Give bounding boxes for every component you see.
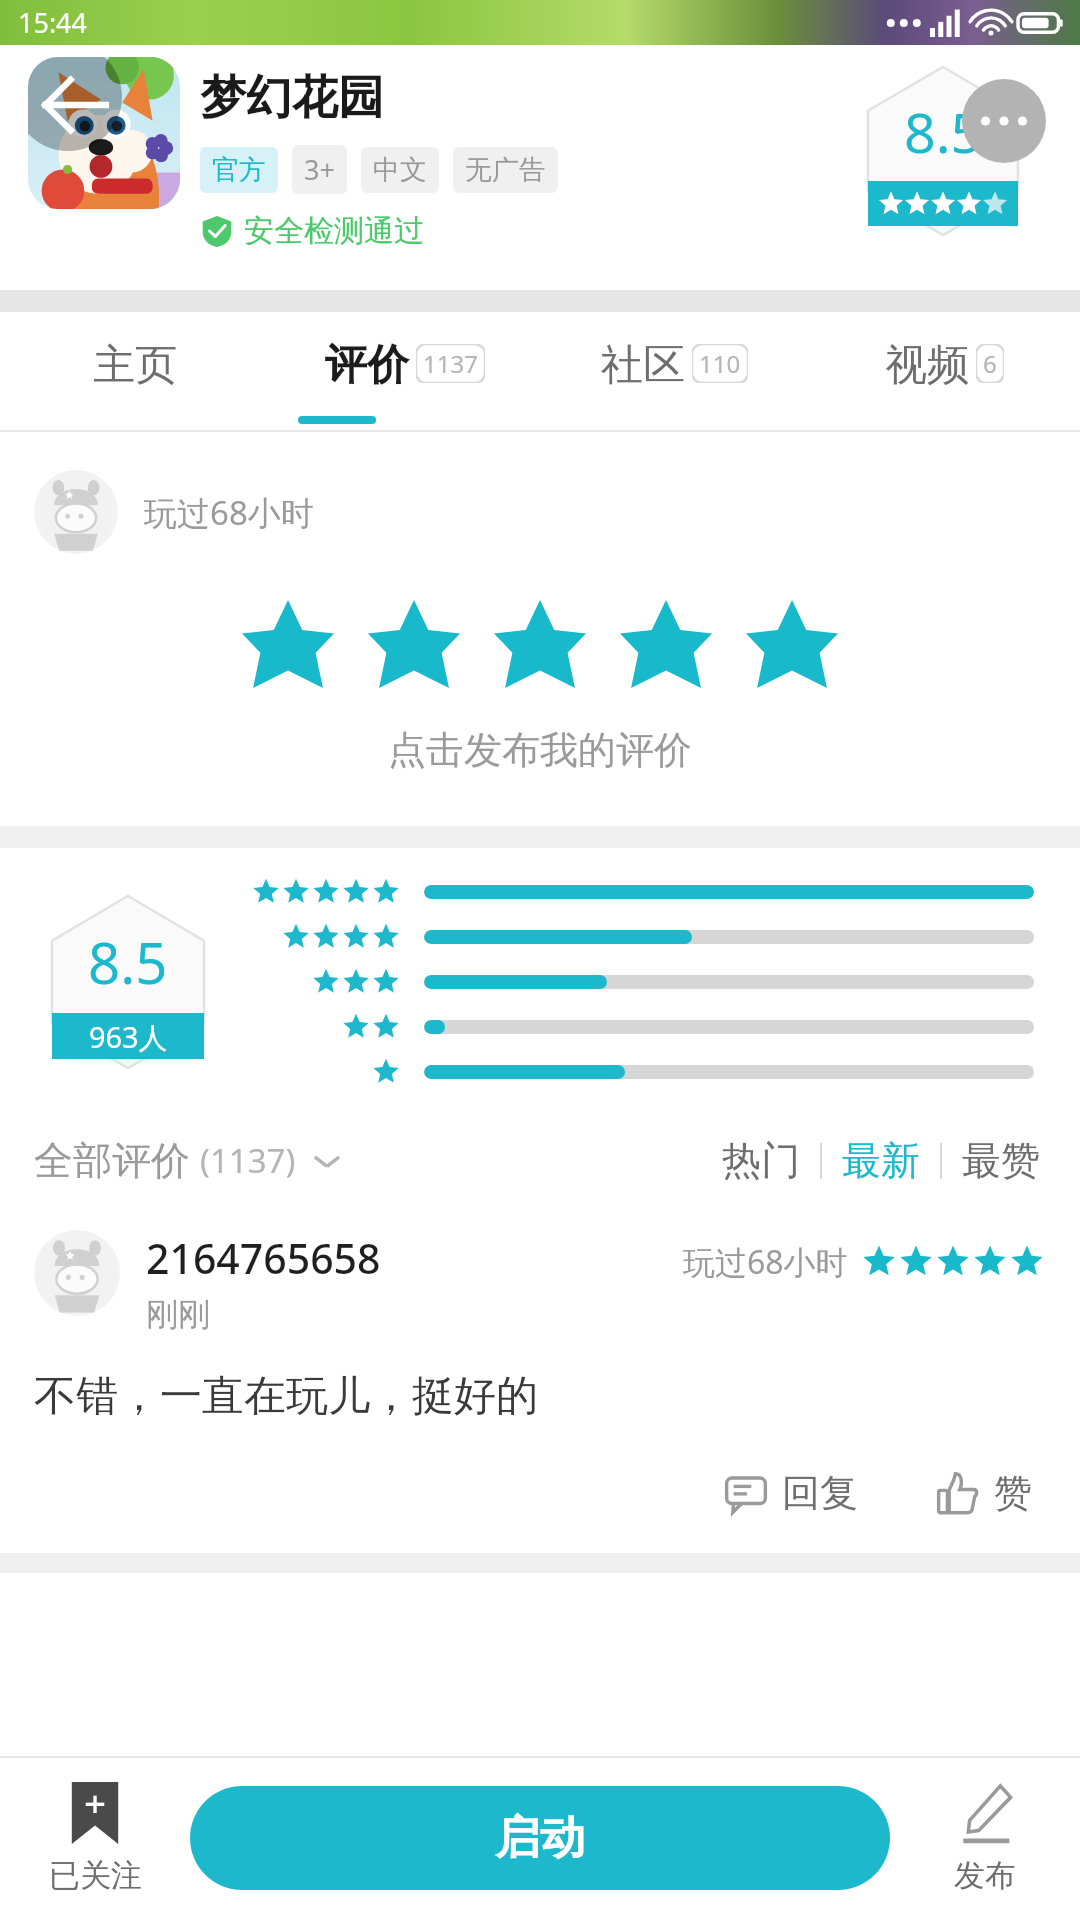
button[interactable]: 点击发布我的评价 bbox=[0, 726, 1080, 774]
button[interactable]: Back bbox=[28, 57, 122, 151]
staticText: 玩过68小时 bbox=[683, 1240, 848, 1284]
button[interactable]: 发布 bbox=[890, 1756, 1080, 1920]
staticText: 3+ bbox=[304, 151, 335, 188]
staticText: 最赞 bbox=[962, 1136, 1040, 1185]
staticText: 1137 bbox=[423, 347, 478, 380]
staticText: 刚刚 bbox=[146, 1294, 210, 1334]
staticText: 6 bbox=[983, 347, 997, 380]
button[interactable]: 热门 bbox=[722, 1136, 800, 1185]
staticText: 最新 bbox=[842, 1136, 920, 1185]
button[interactable] bbox=[0, 600, 1080, 688]
button[interactable]: 主页 bbox=[0, 312, 270, 430]
staticText: 点击发布我的评价 bbox=[388, 726, 692, 774]
button[interactable]: 评价 bbox=[270, 312, 540, 430]
staticText: 启动 bbox=[495, 1810, 585, 1867]
button[interactable]: 中文 bbox=[373, 153, 427, 187]
staticText: 视频 bbox=[885, 339, 969, 392]
staticText: 发布 bbox=[954, 1856, 1016, 1895]
staticText: 玩过68小时 bbox=[144, 490, 314, 535]
staticText: 已关注 bbox=[49, 1856, 142, 1895]
staticText: 无广告 bbox=[465, 153, 546, 187]
staticText: 8.5 bbox=[904, 94, 983, 170]
button[interactable]: 视频 bbox=[810, 312, 1080, 430]
button[interactable]: More options bbox=[962, 79, 1046, 163]
staticText: 110 bbox=[699, 347, 741, 380]
button[interactable]: 无广告 bbox=[465, 153, 546, 187]
staticText: 热门 bbox=[722, 1136, 800, 1185]
staticText: 回复 bbox=[782, 1469, 858, 1517]
staticText: 15:44 bbox=[18, 4, 88, 41]
button[interactable]: 全部评价 bbox=[34, 1136, 344, 1185]
staticText: 8.5 bbox=[88, 924, 168, 1001]
button[interactable]: 已关注 bbox=[0, 1756, 190, 1920]
button[interactable]: 赞 bbox=[928, 1463, 1040, 1523]
staticText: 963人 bbox=[89, 1017, 168, 1056]
button[interactable]: 官方 bbox=[212, 153, 266, 187]
staticText: 全部评价 bbox=[34, 1136, 190, 1185]
staticText: 社区 bbox=[601, 339, 685, 392]
staticText: 不错，一直在玩儿，挺好的 bbox=[34, 1370, 538, 1423]
button[interactable]: 回复 bbox=[716, 1463, 866, 1523]
staticText: 安全检测通过 bbox=[244, 212, 424, 250]
staticText: 2164765658 bbox=[146, 1230, 381, 1286]
staticText: 赞 bbox=[994, 1469, 1032, 1517]
button[interactable]: 3+ bbox=[304, 151, 335, 188]
staticText: 中文 bbox=[373, 153, 427, 187]
staticText: 官方 bbox=[212, 153, 266, 187]
button[interactable]: 最新 bbox=[842, 1136, 920, 1185]
button[interactable]: 启动 bbox=[190, 1786, 890, 1890]
staticText: 评价 bbox=[325, 339, 409, 392]
button[interactable]: 社区 bbox=[540, 312, 810, 430]
staticText: 梦幻花园 bbox=[200, 69, 384, 127]
staticText: (1137) bbox=[200, 1138, 296, 1183]
button[interactable]: 最赞 bbox=[962, 1136, 1040, 1185]
staticText: 主页 bbox=[93, 339, 177, 392]
